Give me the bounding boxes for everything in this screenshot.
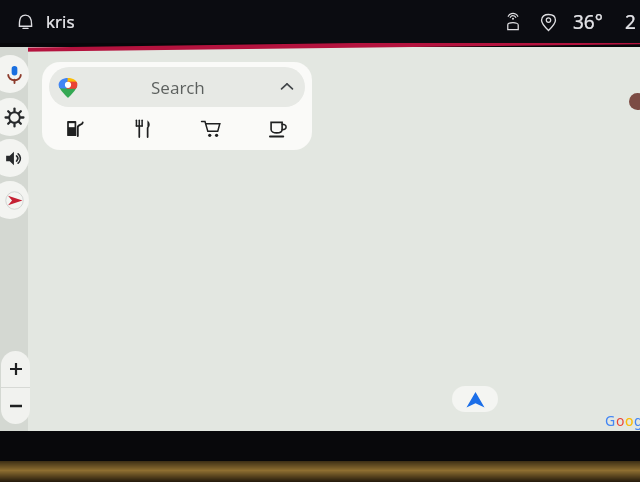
- staticText: g: [634, 411, 640, 430]
- button[interactable]: Settings: [0, 98, 29, 136]
- button[interactable]: Location: [535, 9, 561, 35]
- button[interactable]: Notifications: [10, 7, 40, 37]
- button[interactable]: Voice search: [0, 55, 29, 93]
- staticText: o: [625, 411, 634, 430]
- button[interactable]: Coffee: [244, 107, 312, 150]
- staticText: 36°: [573, 9, 603, 35]
- staticText: Search: [151, 76, 205, 99]
- other: Collapse: [276, 76, 298, 98]
- staticText: kris: [46, 10, 75, 33]
- staticText: o: [616, 411, 625, 430]
- staticText: G: [605, 411, 616, 430]
- button[interactable]: Groceries: [176, 107, 244, 150]
- button[interactable]: Recenter compass: [0, 181, 29, 219]
- staticText: 2: [625, 9, 636, 35]
- button[interactable]: Gas stations: [42, 107, 109, 150]
- button[interactable]: My location: [452, 386, 498, 412]
- button[interactable]: Volume: [0, 139, 29, 177]
- button[interactable]: Car connection: [499, 8, 527, 36]
- button[interactable]: Restaurants: [109, 107, 176, 150]
- button[interactable]: Zoom out: [1, 388, 30, 424]
- button[interactable]: Search: [49, 67, 305, 107]
- button[interactable]: Zoom in: [1, 351, 30, 387]
